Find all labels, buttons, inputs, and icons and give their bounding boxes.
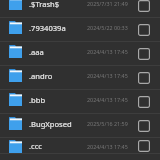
button[interactable]: .$Trash$: [0, 0, 160, 18]
button[interactable]: Select .$Trash$: [138, 0, 150, 12]
staticText: .bbb: [29, 95, 87, 105]
staticText: .ccc: [29, 141, 87, 151]
button[interactable]: .aaa: [0, 42, 160, 66]
staticText: 2025/7/31 21:49: [87, 0, 128, 7]
staticText: .BugXposed: [29, 119, 87, 129]
button[interactable]: .bbb: [0, 90, 160, 114]
staticText: 2024/4/13 17:45: [87, 96, 128, 103]
staticText: 2024/4/13 17:45: [87, 143, 128, 150]
button[interactable]: Select .andro: [138, 72, 150, 84]
button[interactable]: Select .bbb: [138, 96, 150, 108]
button[interactable]: Select .BugXposed: [138, 120, 150, 132]
staticText: 2024/4/13 17:45: [87, 72, 128, 79]
button[interactable]: .BugXposed: [0, 114, 160, 138]
staticText: .$Trash$: [29, 0, 87, 9]
button[interactable]: .7934039a: [0, 18, 160, 42]
staticText: .7934039a: [29, 23, 87, 33]
staticText: .aaa: [29, 47, 87, 57]
button[interactable]: Select .7934039a: [138, 24, 150, 36]
button[interactable]: .ccc: [0, 138, 160, 154]
button[interactable]: Select .ccc: [138, 140, 150, 152]
staticText: 2024/5/22 00:33: [87, 24, 128, 31]
staticText: .andro: [29, 71, 87, 81]
button[interactable]: .andro: [0, 66, 160, 90]
button[interactable]: Select .aaa: [138, 48, 150, 60]
staticText: 2024/4/13 17:45: [87, 48, 128, 55]
staticText: 2025/5/16 21:59: [87, 120, 128, 127]
